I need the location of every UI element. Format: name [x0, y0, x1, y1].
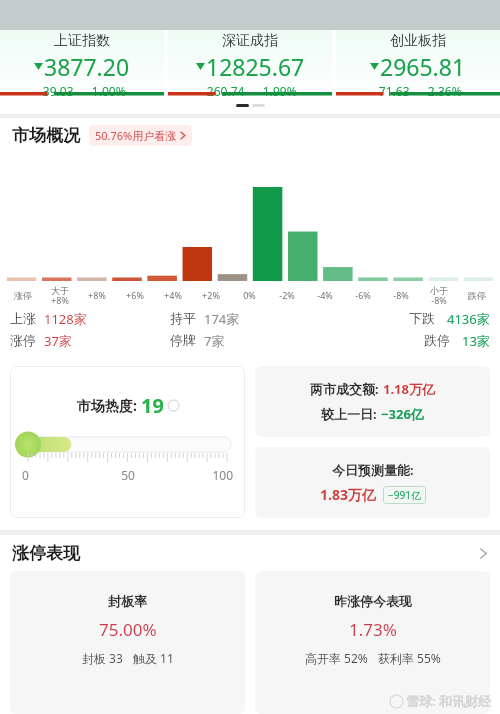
staticText: 1.18万亿 — [383, 380, 435, 398]
button[interactable]: 50.76%用户看涨 — [89, 125, 192, 146]
staticText: 上证指数 — [54, 32, 110, 50]
staticText: −991亿 — [388, 488, 421, 502]
staticText: 跌停 — [424, 332, 450, 348]
other: More — [479, 546, 488, 561]
staticText: 涨停 — [10, 332, 36, 348]
button[interactable]: 深证成指 — [168, 30, 332, 96]
staticText: +2% — [202, 289, 220, 301]
staticText: 涨停 — [14, 290, 32, 301]
staticText: 创业板指 — [390, 32, 446, 50]
staticText: 4136家 — [447, 310, 490, 328]
staticText: 今日预测量能: — [332, 461, 414, 479]
staticText: 50 — [93, 467, 163, 483]
staticText: 大于 +8% — [51, 285, 69, 306]
staticText: 3877.20 — [44, 51, 130, 82]
staticText: -1.00% — [88, 83, 126, 96]
staticText: 市场热度: — [77, 396, 141, 415]
staticText: 触及 11 — [133, 650, 174, 666]
staticText: 跌停 — [468, 290, 486, 301]
button[interactable]: 涨停表现 — [0, 535, 500, 571]
staticText: 1.73% — [349, 618, 397, 641]
staticText: -6% — [355, 289, 371, 301]
staticText: 深证成指 — [222, 32, 278, 50]
staticText: 0 — [22, 467, 93, 483]
staticText: -1.99% — [259, 83, 297, 96]
staticText: 上涨 — [10, 310, 36, 326]
staticText: 涨停表现 — [12, 543, 80, 564]
staticText: -260.74 — [203, 83, 245, 96]
staticText: 较上一日: — [321, 405, 381, 423]
staticText: 市场概况 — [12, 125, 80, 146]
staticText: 37家 — [44, 332, 72, 350]
staticText: 1.83万亿 — [320, 485, 376, 504]
staticText: 昨涨停今表现 — [334, 593, 412, 609]
staticText: 停牌 — [170, 332, 196, 348]
staticText: 13家 — [462, 332, 490, 350]
staticText: -2.36% — [424, 83, 462, 96]
button[interactable]: 市场热度: — [10, 366, 245, 518]
staticText: 7家 — [204, 332, 225, 350]
staticText: 19 — [141, 392, 164, 419]
staticText: 100 — [163, 467, 233, 483]
staticText: 雪球: 和讯财经 — [406, 692, 492, 710]
staticText: -71.63 — [375, 83, 410, 96]
button[interactable]: 今日预测量能: — [255, 447, 490, 518]
staticText: 小于 -8% — [430, 285, 448, 306]
staticText: 0% — [243, 289, 256, 301]
staticText: 2965.81 — [380, 51, 466, 82]
staticText: 封板率 — [108, 593, 147, 609]
button[interactable]: 创业板指 — [336, 30, 500, 96]
staticText: +6% — [126, 289, 144, 301]
button[interactable]: 上证指数 — [0, 30, 164, 96]
staticText: 封板 33 — [82, 650, 123, 666]
staticText: -8% — [393, 289, 409, 301]
staticText: 高开率 52% — [305, 650, 368, 666]
staticText: +8% — [88, 289, 106, 301]
staticText: 12825.67 — [206, 51, 305, 82]
staticText: 下跌 — [409, 310, 435, 326]
staticText: 1128家 — [44, 310, 87, 328]
staticText: 50.76%用户看涨 — [95, 128, 177, 143]
button[interactable]: 封板率 — [10, 571, 245, 714]
staticText: -4% — [317, 289, 333, 301]
button[interactable]: 两市成交额: — [255, 366, 490, 437]
staticText: 174家 — [204, 310, 240, 328]
staticText: -39.03 — [39, 83, 74, 96]
button[interactable]: 昨涨停今表现 — [255, 571, 490, 714]
staticText: −326亿 — [381, 405, 424, 423]
staticText: -2% — [279, 289, 295, 301]
staticText: 两市成交额: — [310, 380, 383, 398]
staticText: 获利率 55% — [378, 650, 441, 666]
staticText: 持平 — [170, 310, 196, 326]
staticText: 75.00% — [99, 618, 157, 641]
staticText: +4% — [164, 289, 182, 301]
